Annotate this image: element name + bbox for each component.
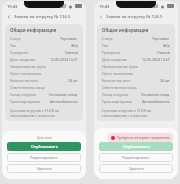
staticText: Склад отгрузки — [102, 92, 128, 97]
staticText: Черновик — [152, 36, 170, 41]
staticText: Статус — [102, 36, 113, 41]
button[interactable]: Удалить — [99, 164, 173, 173]
staticText: Автомобильная — [50, 99, 78, 104]
staticText: Дата создания — [102, 57, 127, 62]
staticText: Наименование груза — [10, 64, 46, 69]
staticText: Требуется интернет соединение — [117, 135, 170, 140]
staticText: Пункт назначения — [10, 71, 42, 76]
staticText: Транспортировка — [10, 99, 40, 104]
staticText: Удалить — [129, 166, 144, 171]
staticText: Заявка на отгрузку № 124-5 — [106, 14, 163, 20]
staticText: Склад отгрузки — [10, 92, 36, 97]
button[interactable]: Опубликовать — [99, 142, 173, 151]
staticText: 12.05.2024 14:21 — [142, 57, 170, 62]
staticText: Действия — [37, 136, 52, 140]
staticText: 12.05.2024 14:21 — [50, 57, 78, 62]
staticText: Количество мест — [10, 78, 39, 83]
staticText: Черновик — [60, 36, 78, 41]
button[interactable]: Назад — [5, 13, 13, 21]
staticText: Низкий — [157, 50, 170, 55]
staticText: Автомобильная — [142, 99, 170, 104]
staticText: Основной склад — [49, 92, 78, 97]
button[interactable]: Редактировать — [7, 153, 81, 162]
staticText: Срочная отгрузка к 15:00 по согласованию… — [102, 108, 151, 118]
staticText: Транспортировка — [102, 99, 132, 104]
staticText: Опубликовать — [31, 144, 58, 149]
staticText: Количество мест — [102, 78, 131, 83]
staticText: Тип — [10, 43, 17, 48]
staticText: Общая информация — [10, 27, 57, 33]
button[interactable]: Удалить — [7, 164, 81, 173]
staticText: Приоритет — [102, 50, 121, 55]
staticText: Редактировать — [30, 155, 58, 160]
staticText: Общая информация — [102, 27, 149, 33]
staticText: Основной склад — [141, 92, 170, 97]
staticText: Срочная отгрузка к 15:00 по согласованию… — [10, 108, 59, 118]
staticText: Наименование груза — [102, 64, 138, 69]
button[interactable]: Редактировать — [99, 153, 173, 162]
staticText: Ж/д — [71, 43, 78, 48]
staticText: Заявка на отгрузку № 124-5 — [14, 14, 71, 20]
staticText: Приоритет — [10, 50, 29, 55]
staticText: Низкий — [65, 50, 78, 55]
staticText: Пункт назначения — [102, 71, 134, 76]
staticText: 19:43 — [99, 4, 110, 9]
staticText: Тип — [102, 43, 109, 48]
button[interactable]: Опубликовать — [7, 142, 81, 151]
staticText: Ответственное лицо — [10, 85, 45, 90]
staticText: Опубликовать — [123, 144, 150, 149]
staticText: 19:43 — [7, 4, 18, 9]
staticText: 24 шт — [160, 78, 170, 83]
button[interactable]: Назад — [97, 13, 105, 21]
staticText: Редактировать — [122, 155, 150, 160]
staticText: 24 шт — [68, 78, 78, 83]
staticText: Ответственное лицо — [102, 85, 137, 90]
staticText: Статус — [10, 36, 21, 41]
staticText: Удалить — [37, 166, 52, 171]
staticText: Ж/д — [163, 43, 170, 48]
staticText: Дата создания — [10, 57, 35, 62]
